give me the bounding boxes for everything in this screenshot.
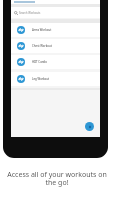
staticText: Search Workouts [19,11,41,15]
button[interactable]: Arms Workout [11,23,100,37]
staticText: Chest Workout [32,44,52,48]
button[interactable]: Search Workouts [11,7,100,18]
button[interactable]: HIIT Cardio [11,55,100,69]
staticText: Access all of your workouts on the go! [7,170,107,187]
staticText: HIIT Cardio [32,60,48,64]
button[interactable]: Leg Workout [11,72,100,86]
staticText: Leg Workout [32,77,50,81]
staticText: Arms Workout [32,28,52,32]
button[interactable]: Chest Workout [11,39,100,53]
button[interactable]: Add workout [85,122,94,131]
